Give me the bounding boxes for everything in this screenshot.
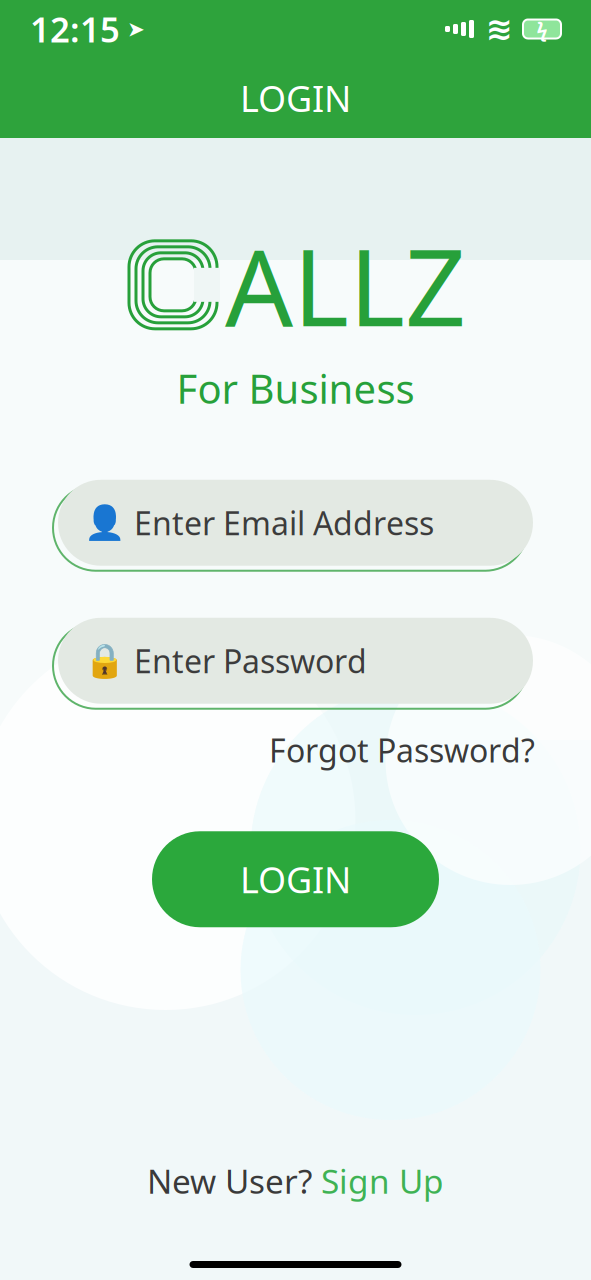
staticText: For Business xyxy=(176,362,414,415)
staticText: ALLZ xyxy=(225,214,466,356)
button[interactable]: LOGIN xyxy=(152,831,439,927)
staticText: LOGIN xyxy=(240,855,351,903)
staticText: 👤 xyxy=(84,504,126,542)
staticText: ϟ xyxy=(536,16,547,42)
staticText: ≋ xyxy=(486,11,513,47)
button[interactable]: Sign Up xyxy=(321,1159,444,1203)
staticText: New User? xyxy=(147,1159,321,1203)
staticText: Enter Email Address xyxy=(134,501,434,544)
button[interactable]: Enter Password xyxy=(58,615,533,707)
staticText: Forgot Password? xyxy=(269,729,535,771)
staticText: LOGIN xyxy=(240,74,351,122)
button[interactable]: Enter Email Address xyxy=(58,477,533,569)
staticText: 12:15 xyxy=(30,6,120,52)
staticText: Enter Password xyxy=(134,639,367,682)
staticText: ➤ xyxy=(120,17,145,41)
staticText: 🔒 xyxy=(84,642,126,680)
staticText: Sign Up xyxy=(321,1159,444,1203)
button[interactable]: Forgot Password? xyxy=(269,729,535,771)
